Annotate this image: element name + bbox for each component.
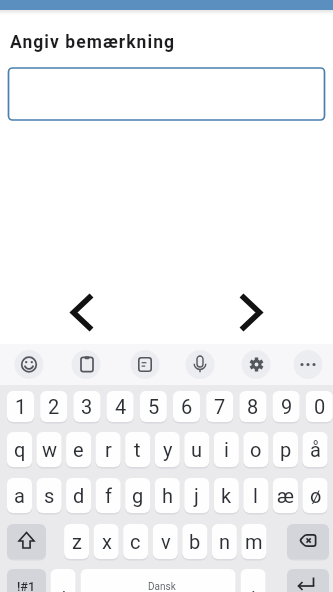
staticText: 6 xyxy=(181,395,193,418)
staticText: 5 xyxy=(148,395,160,418)
staticText: 2 xyxy=(48,395,60,418)
staticText: . xyxy=(251,576,256,592)
staticText: p xyxy=(280,438,292,461)
staticText: e xyxy=(73,438,84,461)
staticText: ø xyxy=(310,484,322,507)
staticText: o xyxy=(250,438,262,461)
staticText: a xyxy=(14,484,25,507)
staticText: g xyxy=(132,484,144,507)
staticText: 9 xyxy=(281,395,293,418)
staticText: !#1 xyxy=(17,579,36,592)
staticText: 3 xyxy=(81,395,93,418)
staticText: q xyxy=(14,438,26,461)
staticText: z xyxy=(72,530,82,553)
staticText: u xyxy=(191,438,203,461)
staticText: 0 xyxy=(314,395,326,418)
staticText: Angiv bemærkning xyxy=(10,32,176,53)
staticText: l xyxy=(253,484,258,507)
staticText: k xyxy=(221,484,232,507)
staticText: b xyxy=(189,530,201,553)
staticText: w xyxy=(42,438,58,461)
staticText: j xyxy=(194,484,199,507)
staticText: å xyxy=(310,438,321,461)
staticText: i xyxy=(224,438,229,461)
staticText: r xyxy=(105,438,112,461)
staticText: v xyxy=(161,530,171,553)
staticText: x xyxy=(102,530,112,553)
staticText: s xyxy=(44,484,55,507)
staticText: t xyxy=(134,438,141,461)
staticText: n xyxy=(219,530,231,553)
staticText: d xyxy=(73,484,85,507)
staticText: æ xyxy=(277,484,294,507)
staticText: 7 xyxy=(214,395,226,418)
staticText: , xyxy=(62,576,66,592)
staticText: f xyxy=(105,484,112,507)
staticText: 8 xyxy=(247,395,259,418)
staticText: Dansk xyxy=(148,581,176,592)
staticText: 1 xyxy=(15,395,27,418)
staticText: y xyxy=(163,438,173,461)
staticText: h xyxy=(162,484,174,507)
staticText: c xyxy=(130,530,141,553)
staticText: 4 xyxy=(115,395,127,418)
staticText: m xyxy=(245,530,263,553)
